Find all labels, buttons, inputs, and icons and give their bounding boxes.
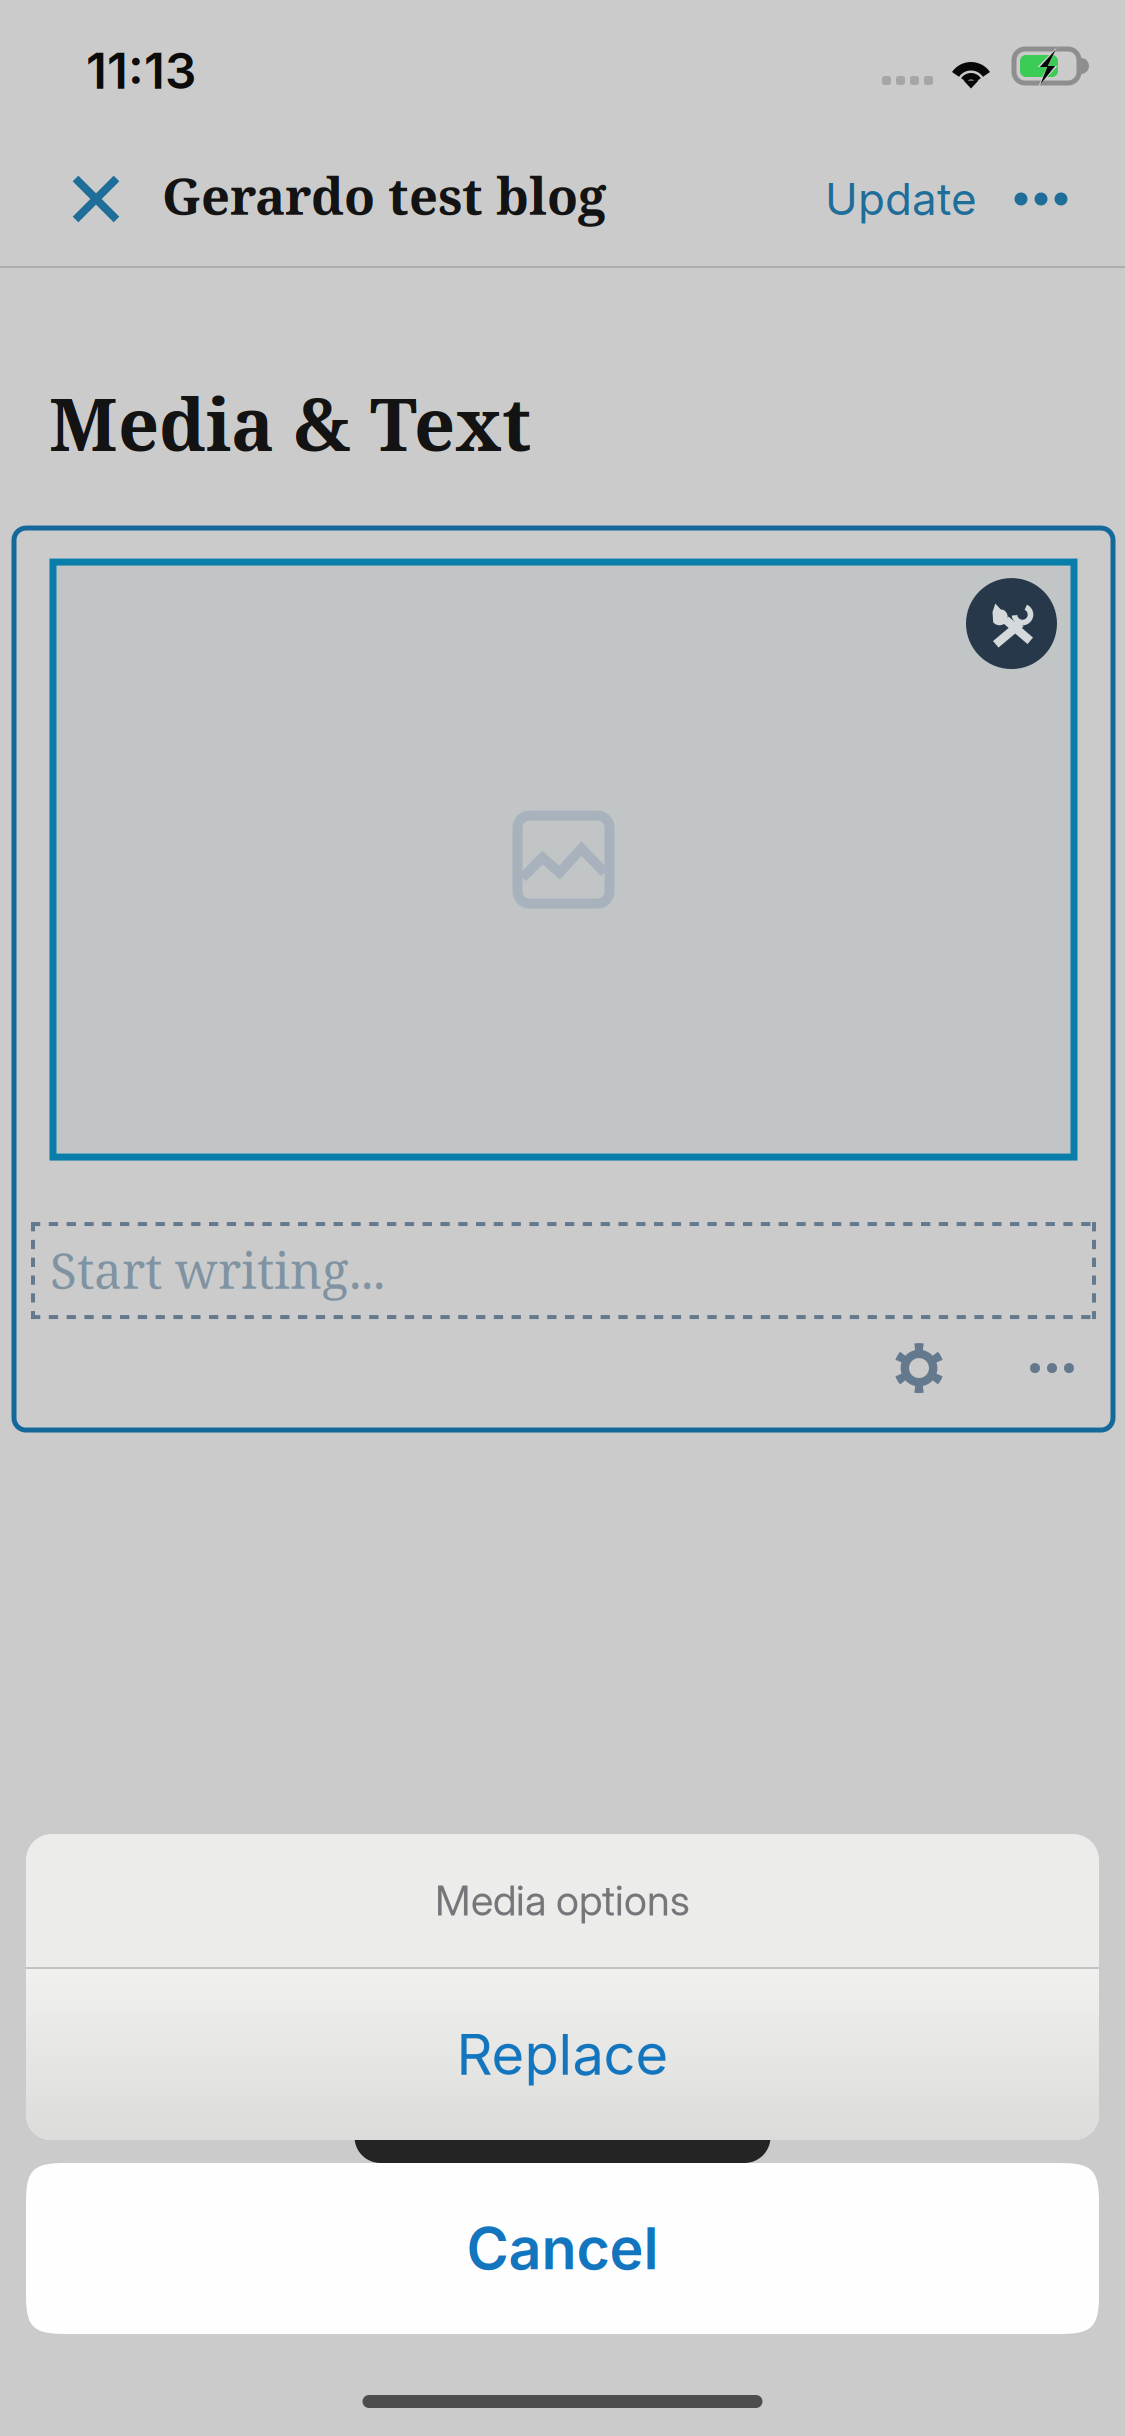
button[interactable]: Edit media	[966, 578, 1057, 669]
button[interactable]: Start writing...	[31, 1222, 1096, 1319]
button[interactable]: Cancel	[26, 2163, 1099, 2334]
button[interactable]: Update	[807, 132, 995, 266]
staticText: Media options	[435, 1875, 690, 1925]
button[interactable]: More block options	[993, 1320, 1111, 1416]
button[interactable]: Replace	[26, 1969, 1099, 2140]
staticText: Replace	[456, 2021, 668, 2088]
staticText: Gerardo test blog	[162, 160, 606, 229]
button[interactable]: Close	[37, 132, 155, 266]
button[interactable]: More options	[995, 132, 1105, 266]
staticText: Update	[825, 172, 977, 226]
staticText: Start writing...	[50, 1236, 385, 1303]
button[interactable]: Block settings	[845, 1320, 993, 1416]
staticText: Media & Text	[49, 374, 531, 472]
staticText: Cancel	[466, 2214, 658, 2283]
staticText: 11:13	[86, 41, 196, 101]
